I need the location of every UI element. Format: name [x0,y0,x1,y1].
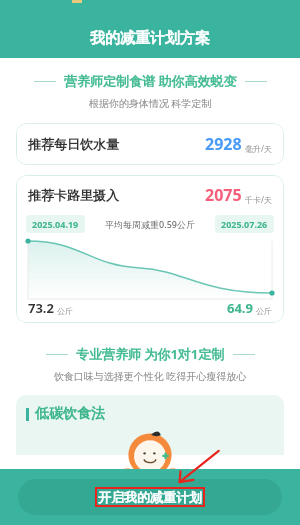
other: Annotation arrow [175,449,221,485]
staticText: 2928 [205,133,242,155]
staticText: 2075 [205,184,242,206]
staticText: 公斤 [57,306,73,316]
staticText: 64.9 [227,299,253,317]
button[interactable]: 开启我的减重计划 [18,479,282,515]
staticText: 营养师定制食谱 助你高效蜕变 [64,72,237,90]
staticText: 2025.07.26 [221,218,268,230]
staticText: 73.2 [28,299,54,317]
staticText: 平均每周减重0.59公斤 [105,218,195,230]
staticText: 毫升/天 [245,143,272,154]
button[interactable]: 低碳饮食法 [16,395,284,455]
staticText: 公斤 [256,306,272,316]
staticText: 千卡/天 [245,194,272,205]
button[interactable]: 2025.04.19 [32,218,79,230]
staticText: 开启我的减重计划 [98,489,202,505]
button[interactable]: 2025.07.26 [221,218,268,230]
staticText: 根据你的身体情况 科学定制 [0,96,300,110]
staticText: 我的减重计划方案 [90,29,210,48]
staticText: 2025.04.19 [32,218,79,230]
staticText: 低碳饮食法 [35,405,105,423]
staticText: 推荐卡路里摄入 [28,187,119,203]
staticText: 专业营养师 为你1对1定制 [76,345,225,363]
button[interactable]: 推荐每日饮水量 [16,123,284,165]
staticText: 推荐每日饮水量 [28,136,119,152]
button[interactable]: 推荐卡路里摄入 [16,175,284,323]
staticText: 饮食口味与选择更个性化 吃得开心瘦得放心 [0,369,300,383]
